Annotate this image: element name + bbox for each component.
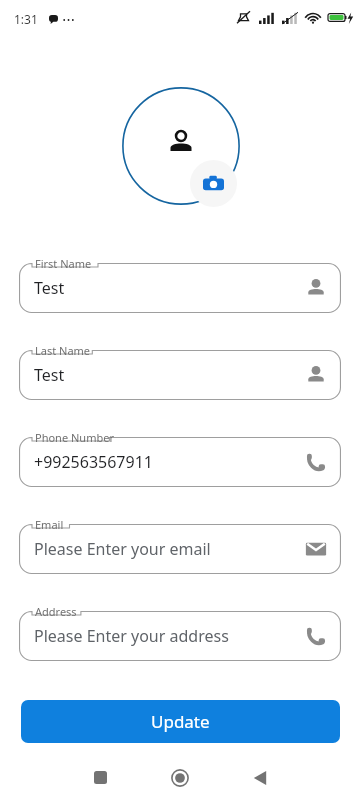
- button[interactable]: Back: [220, 755, 300, 800]
- staticText: Test: [34, 364, 65, 386]
- staticText: Phone Number: [35, 430, 114, 445]
- button[interactable]: Home: [140, 755, 220, 800]
- button[interactable]: Phone Number: [19, 437, 341, 487]
- staticText: Please Enter your address: [34, 625, 229, 647]
- button[interactable]: Email: [19, 524, 341, 574]
- staticText: First Name: [35, 256, 92, 271]
- staticText: 1:31: [14, 11, 38, 27]
- staticText: Address: [35, 604, 77, 619]
- button[interactable]: Update: [21, 700, 340, 743]
- button[interactable]: Address: [19, 611, 341, 661]
- staticText: Test: [34, 277, 65, 299]
- button[interactable]: First Name: [19, 263, 341, 313]
- button[interactable]: Last Name: [19, 350, 341, 400]
- staticText: Email: [35, 517, 64, 532]
- staticText: Last Name: [35, 343, 91, 358]
- staticText: Update: [151, 710, 210, 733]
- button[interactable]: Recent apps: [60, 755, 140, 800]
- button[interactable]: Change profile photo: [190, 160, 237, 207]
- staticText: +992563567911: [34, 451, 153, 473]
- staticText: Please Enter your email: [34, 538, 211, 560]
